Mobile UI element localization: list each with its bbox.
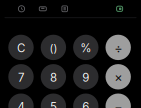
button[interactable]: ÷ (105, 35, 131, 60)
button[interactable]: () (41, 35, 66, 60)
staticText: 4 (17, 100, 24, 108)
button[interactable]: Recording indicator (113, 3, 127, 15)
button[interactable]: 5 (41, 93, 66, 108)
button[interactable]: 9 (73, 64, 98, 89)
button[interactable]: 4 (8, 93, 34, 108)
button[interactable]: 7 (8, 64, 34, 89)
staticText: 7 (18, 71, 24, 84)
button[interactable]: C (8, 35, 34, 60)
staticText: 6 (82, 100, 89, 108)
staticText: % (80, 41, 91, 55)
button[interactable]: % (73, 35, 98, 60)
staticText: 5 (50, 100, 57, 108)
staticText: − (114, 99, 122, 108)
button[interactable]: − (105, 93, 131, 108)
button[interactable]: 8 (41, 64, 66, 89)
staticText: ÷ (114, 40, 122, 56)
button[interactable]: 6 (73, 93, 98, 108)
staticText: × (114, 70, 122, 85)
staticText: 8 (50, 71, 57, 84)
staticText: 9 (82, 71, 89, 84)
staticText: () (49, 42, 57, 54)
staticText: C (17, 41, 25, 55)
button[interactable]: × (105, 64, 131, 89)
